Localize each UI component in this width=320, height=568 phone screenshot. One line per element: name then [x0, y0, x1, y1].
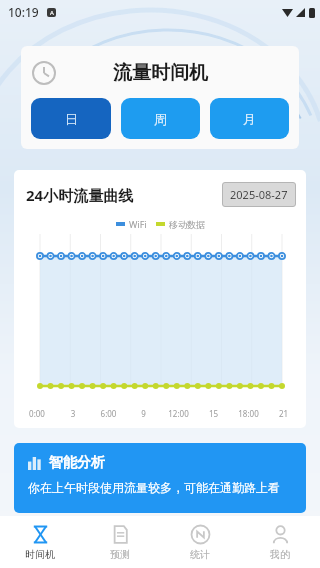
staticText: 21 [266, 408, 301, 419]
staticText: 预测 [110, 548, 130, 561]
staticText: 智能分析 [49, 454, 105, 472]
staticText: 周 [154, 111, 167, 127]
staticText: 流量时间机 [113, 61, 208, 85]
staticText: 24小时流量曲线 [26, 185, 134, 205]
staticText: 6:00 [91, 408, 126, 419]
staticText: 9 [126, 408, 161, 419]
staticText: 12:00 [161, 408, 196, 419]
staticText: 15 [196, 408, 231, 419]
staticText: 月 [243, 111, 256, 127]
button[interactable]: 时间机 [0, 516, 80, 568]
button[interactable]: 预测 [80, 516, 160, 568]
staticText: 我的 [270, 548, 290, 561]
staticText: 移动数据 [169, 219, 205, 230]
staticText: 10:19 [8, 4, 39, 20]
other: Clock [31, 60, 57, 86]
button[interactable]: 月 [210, 98, 289, 139]
staticText: 0:00 [19, 408, 55, 419]
staticText: A [50, 9, 54, 17]
button[interactable]: 智能分析 [14, 443, 306, 513]
button[interactable]: 统计 [160, 516, 240, 568]
staticText: 时间机 [25, 548, 55, 561]
button[interactable]: 周 [121, 98, 200, 139]
staticText: 你在上午时段使用流量较多，可能在通勤路上看 [28, 480, 280, 495]
button[interactable]: 日 [31, 98, 111, 139]
button[interactable]: 我的 [240, 516, 320, 568]
button[interactable]: 2025-08-27 [222, 182, 296, 207]
staticText: 日 [65, 111, 78, 127]
staticText: 3 [55, 408, 91, 419]
staticText: WiFi [129, 218, 147, 230]
staticText: 2025-08-27 [230, 187, 288, 202]
staticText: 18:00 [231, 408, 266, 419]
staticText: 统计 [190, 548, 210, 561]
